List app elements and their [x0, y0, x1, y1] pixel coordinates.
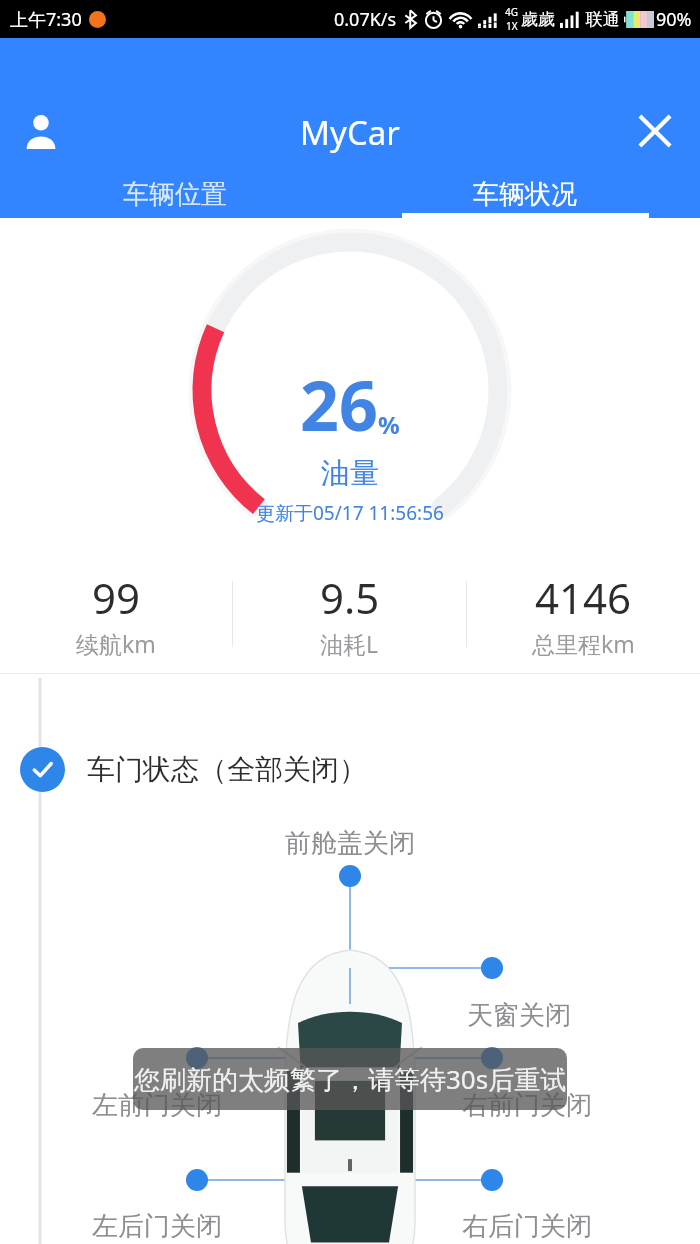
- button[interactable]: 车辆状况: [350, 178, 700, 218]
- staticText: 歲歲: [521, 9, 555, 30]
- staticText: 油量: [321, 455, 379, 492]
- staticText: 续航km: [76, 628, 156, 659]
- staticText: 总里程km: [532, 628, 635, 659]
- staticText: 99: [92, 569, 141, 626]
- staticText: 油耗L: [320, 628, 379, 659]
- button[interactable]: 车门状态（全部关闭）: [20, 747, 367, 792]
- staticText: 天窗关闭: [467, 999, 571, 1032]
- staticText: 车辆位置: [123, 178, 227, 211]
- staticText: 90%: [656, 7, 692, 32]
- button[interactable]: 4146: [467, 558, 700, 670]
- staticText: %: [378, 408, 400, 441]
- button[interactable]: Profile: [10, 100, 72, 162]
- staticText: 车门状态（全部关闭）: [87, 752, 367, 787]
- staticText: 前舱盖关闭: [285, 827, 415, 860]
- button[interactable]: Close: [624, 100, 686, 162]
- staticText: 26: [300, 358, 378, 451]
- staticText: 车辆状况: [473, 178, 577, 211]
- button[interactable]: 9.5: [233, 558, 466, 670]
- staticText: MyCar: [0, 110, 700, 155]
- staticText: 左后门关闭: [92, 1210, 222, 1243]
- staticText: 1X: [506, 19, 518, 33]
- staticText: 4146: [535, 569, 632, 626]
- staticText: 更新于05/17 11:56:56: [256, 500, 444, 526]
- staticText: 联通: [586, 9, 620, 30]
- staticText: 左前门关闭: [92, 1089, 222, 1122]
- button[interactable]: 车辆位置: [0, 178, 350, 218]
- staticText: 0.07K/s: [334, 7, 397, 32]
- button[interactable]: 99: [0, 558, 232, 670]
- staticText: 您刷新的太频繁了，请等待30s后重试: [134, 1061, 567, 1097]
- staticText: 右前门关闭: [462, 1089, 592, 1122]
- staticText: 右后门关闭: [462, 1210, 592, 1243]
- staticText: 上午7:30: [10, 7, 82, 32]
- staticText: 9.5: [320, 569, 380, 626]
- staticText: 4G: [505, 5, 518, 19]
